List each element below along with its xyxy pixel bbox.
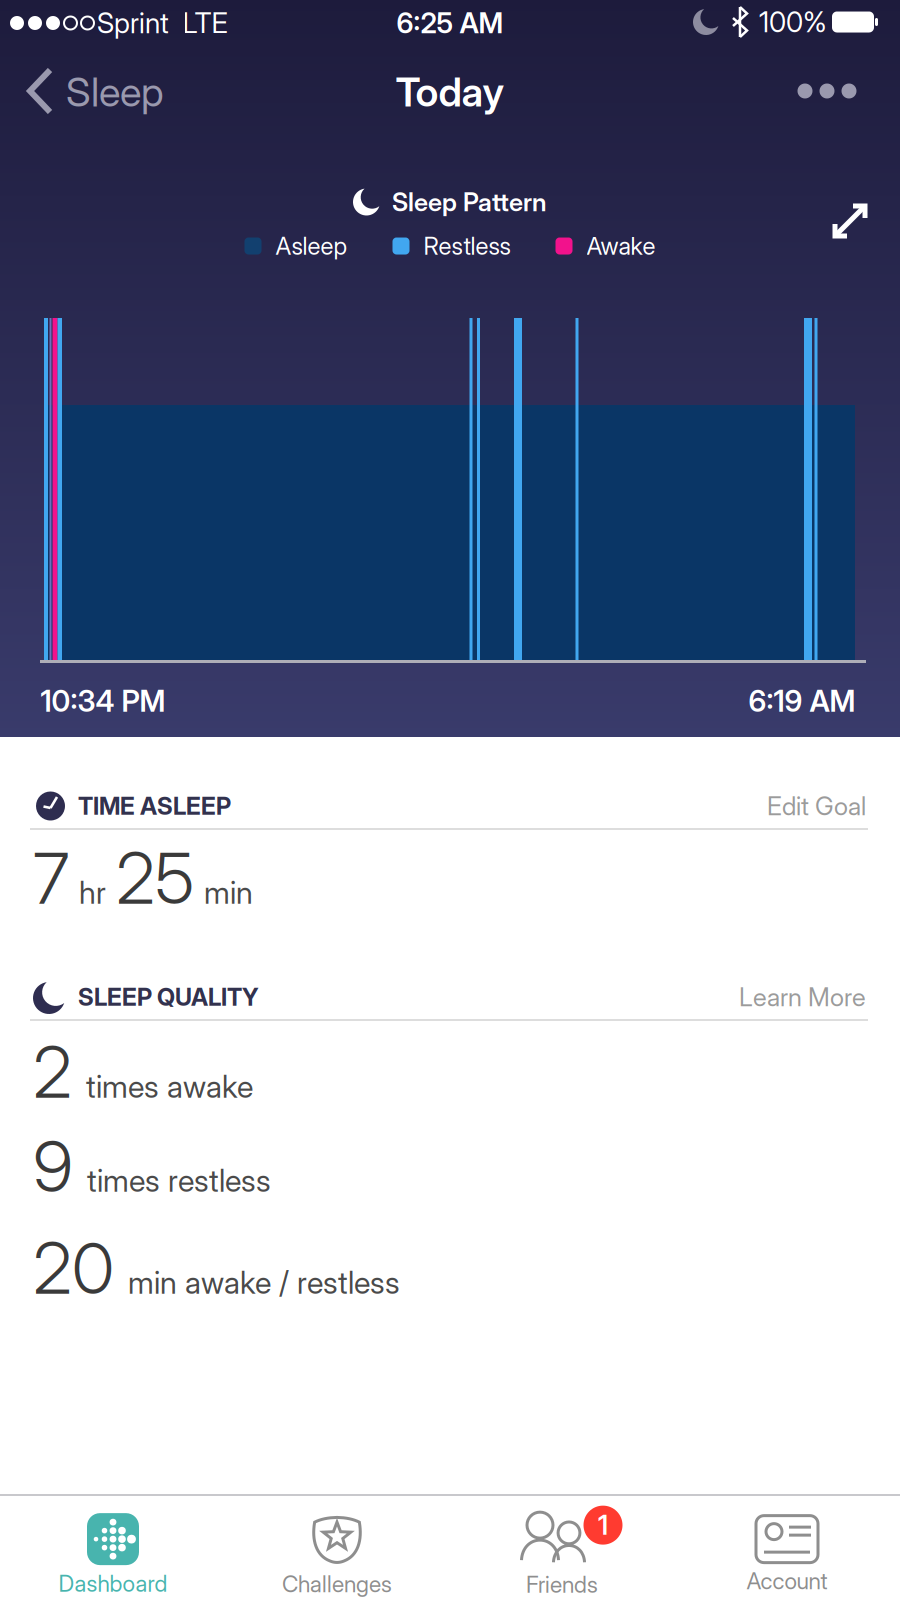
staticText: SLEEP QUALITY [78, 983, 259, 1011]
staticText: Sleep [66, 68, 164, 116]
staticText: Dashboard [58, 1570, 167, 1597]
staticText: 7 [33, 836, 69, 920]
staticText: Sprint [97, 6, 169, 39]
staticText: Edit Goal [767, 791, 866, 821]
staticText: 6:25 AM [396, 6, 503, 39]
button[interactable]: Sleep [30, 68, 164, 116]
staticText: Challenges [282, 1571, 392, 1597]
staticText: Asleep [275, 232, 347, 260]
staticText: min awake / restless [128, 1264, 400, 1301]
staticText: 10:34 PM [40, 684, 165, 718]
staticText: Today [395, 68, 504, 116]
staticText: Friends [526, 1571, 598, 1598]
button[interactable]: Edit Goal [767, 791, 866, 821]
staticText: LTE [182, 6, 227, 39]
staticText: 2 [33, 1030, 72, 1114]
staticText: hr [79, 874, 106, 911]
button[interactable] [787, 73, 866, 108]
staticText: 100% [759, 5, 827, 38]
staticText: Learn More [739, 982, 866, 1012]
staticText: 1 [598, 1509, 608, 1541]
staticText: Account [746, 1568, 827, 1594]
button[interactable] [830, 201, 870, 241]
staticText: Awake [586, 232, 655, 260]
staticText: times restless [87, 1162, 271, 1199]
button[interactable]: Challenges [225, 1503, 449, 1600]
button[interactable]: 1 [450, 1503, 674, 1600]
staticText: TIME ASLEEP [78, 792, 231, 820]
staticText: 6:19 AM [748, 684, 855, 718]
staticText: 9 [33, 1124, 73, 1208]
button[interactable]: Account [675, 1503, 899, 1600]
staticText: 20 [33, 1226, 114, 1310]
button[interactable]: Dashboard [1, 1503, 225, 1600]
button[interactable]: Learn More [739, 982, 866, 1012]
staticText: times awake [86, 1068, 253, 1105]
staticText: Sleep Pattern [392, 187, 547, 217]
staticText: 25 [116, 836, 194, 920]
staticText: min [204, 874, 253, 911]
staticText: Restless [423, 232, 510, 260]
